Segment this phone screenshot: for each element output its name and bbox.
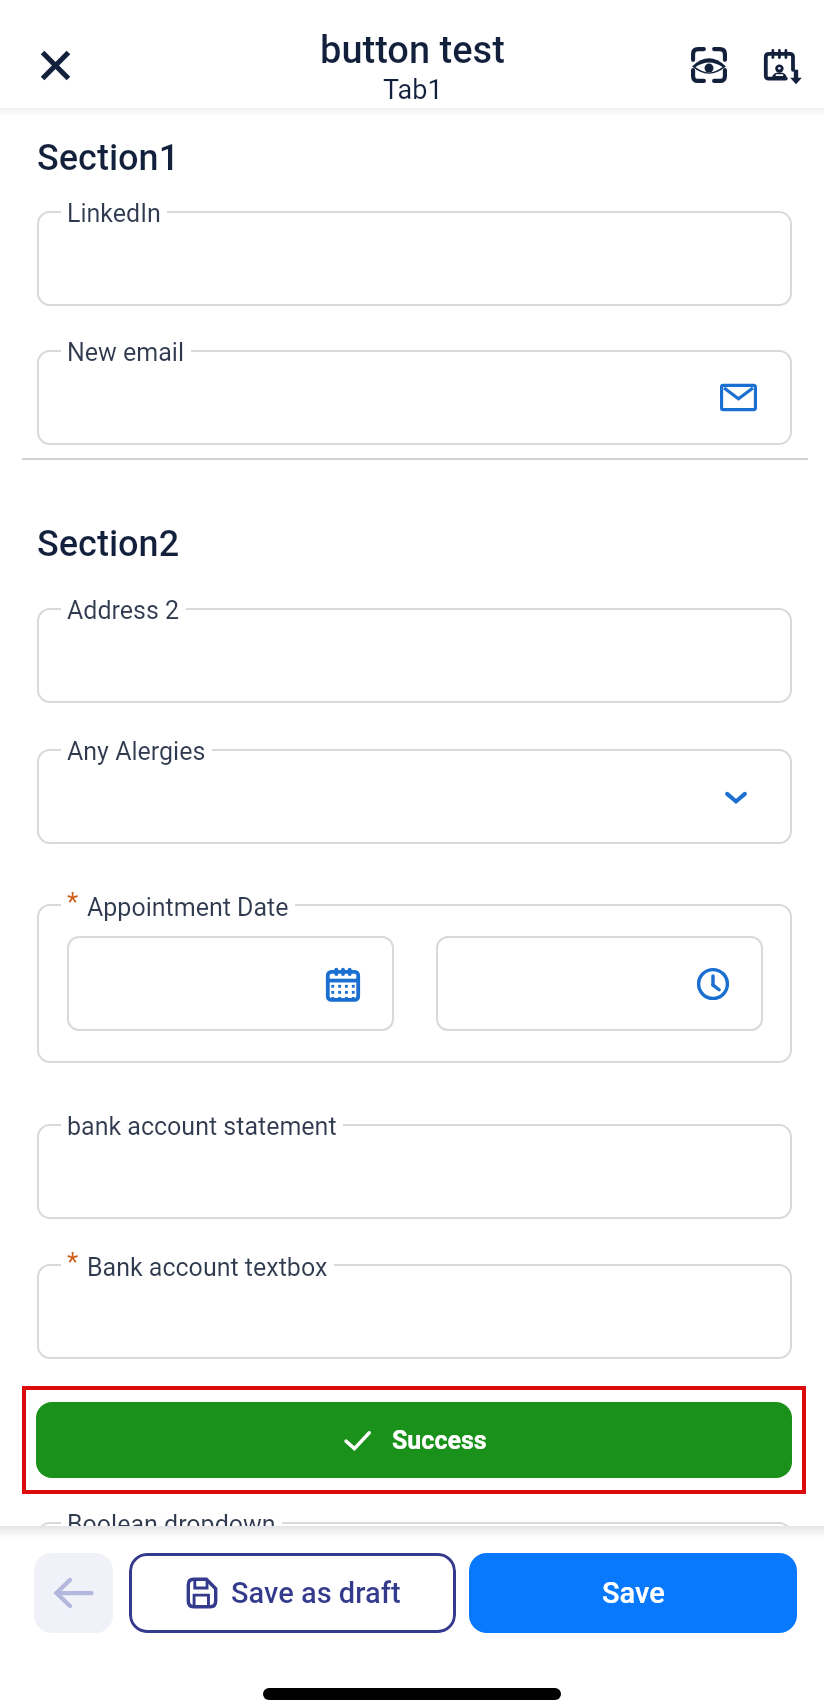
staticText: LinkedIn [67,199,161,228]
staticText: Any Alergies [67,737,206,766]
staticText: Success [392,1426,487,1455]
staticText: Section2 [37,523,180,565]
staticText: Bank account textbox [87,1253,328,1282]
button[interactable]: Import contact [745,29,817,101]
button[interactable] [37,211,792,306]
staticText: Appointment Date [87,893,289,922]
button[interactable] [67,936,394,1031]
staticText: Save [602,1576,665,1610]
button[interactable] [37,1264,792,1359]
staticText: Tab1 [383,74,443,106]
staticText: Address 2 [67,596,180,625]
staticText: * [67,1247,79,1277]
button[interactable]: Save [469,1553,797,1633]
staticText: Boolean dropdown [67,1510,276,1539]
staticText: * [67,887,79,917]
button[interactable]: Save as draft [129,1553,456,1633]
button[interactable]: Close [17,27,93,103]
button[interactable] [436,936,763,1031]
staticText: New email [67,338,185,367]
staticText: button test [320,28,505,73]
staticText: Section1 [37,137,180,179]
button[interactable]: Success [36,1402,792,1478]
button[interactable] [37,904,792,1063]
button[interactable] [37,1124,792,1219]
button[interactable] [37,608,792,703]
button[interactable]: Back [34,1553,113,1633]
button[interactable] [37,350,792,445]
button[interactable] [37,749,792,844]
button[interactable] [37,1522,792,1617]
button[interactable]: Scan [673,29,745,101]
staticText: bank account statement [67,1112,337,1141]
staticText: Save as draft [231,1576,401,1610]
